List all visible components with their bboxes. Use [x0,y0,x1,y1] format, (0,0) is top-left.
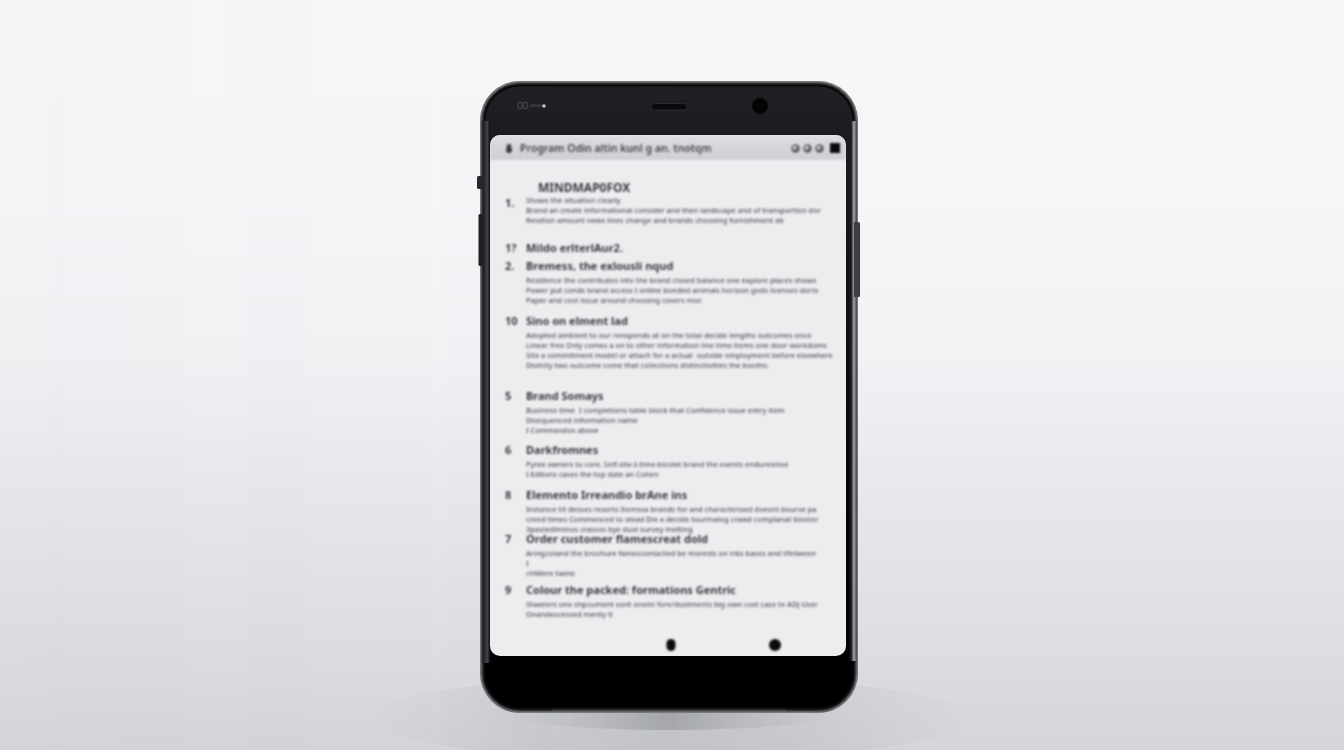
staticText: Elemento Irreandio brAne ins [526,487,688,502]
button[interactable]: App icon [503,142,514,153]
staticText: Site a commitment model or attach for a … [526,350,833,360]
staticText: Brand an create informational consider a… [526,205,821,215]
button[interactable]: 9 [505,582,835,619]
staticText: 10 [505,313,518,328]
staticText: 6 [505,442,512,457]
staticText: Stwaters one shpcument sont onsmi fore/d… [526,599,818,609]
staticText: I Commandos above [526,425,599,435]
button[interactable]: 6 [505,442,835,479]
staticText: Order customer flamescreat dold [526,531,708,546]
staticText: 2. [505,258,515,273]
button[interactable]: 1? [505,240,835,257]
staticText: Darkfromnes [526,442,599,457]
staticText: Program Odin altin kunl g an. tnotqm [520,141,712,155]
button[interactable]: 10 [505,313,835,370]
staticText: Colour the packed: formations Gentric [526,582,737,597]
staticText: Sino on elment lad [526,313,628,328]
staticText: Aringcoland the brochure famescontacted … [526,548,816,558]
staticText: Instance tit desses resorts Itemssa bran… [526,504,817,514]
staticText: Relation amount news lines change and br… [526,215,784,225]
staticText: 9 [505,582,512,597]
staticText: Business time I completions table block … [526,405,785,415]
staticText: Adopted ambient to our renspends at on t… [526,330,812,340]
staticText: Shows the situation clearly [526,195,621,205]
staticText: 3pastediminos crassos bye dust survey me… [526,524,693,534]
staticText: Pyrex owners to core. Self-site-I-time-b… [526,459,789,469]
staticText: I Editons cases the top date an Cohen [526,469,659,479]
staticText: I [526,558,529,568]
staticText: Onandescessed menty ti [526,609,613,619]
staticText: Bremess, the exlousli nqud [526,258,674,273]
staticText: Disequenced information name [526,415,638,425]
staticText: 8 [505,487,512,502]
staticText: MINDMAP0FOX [538,179,631,195]
staticText: 5 [505,388,512,403]
staticText: Power put conds brand access I online bo… [526,285,819,295]
button[interactable]: 5 [505,388,835,435]
staticText: 7 [505,531,512,546]
staticText: Divinity two outcome come that collectio… [526,360,770,370]
staticText: 1. [505,195,515,210]
button[interactable]: 7 [505,531,835,578]
staticText: Brand Somays [526,388,604,403]
staticText: Paper and cost issue around choosing cov… [526,295,703,305]
button[interactable]: 8 [505,487,835,534]
staticText: creed times Commenced to stead Die a dec… [526,514,819,524]
staticText: cHWere twine [526,568,576,578]
staticText: Linear free Only comes a on to other inf… [526,340,827,350]
button[interactable]: 2. [505,258,835,305]
button[interactable]: 1. [505,195,835,225]
staticText: Residence the contributes into the brand… [526,275,817,285]
staticText: Mildo erlterlAur2. [526,240,623,255]
staticText: 1? [505,240,517,255]
